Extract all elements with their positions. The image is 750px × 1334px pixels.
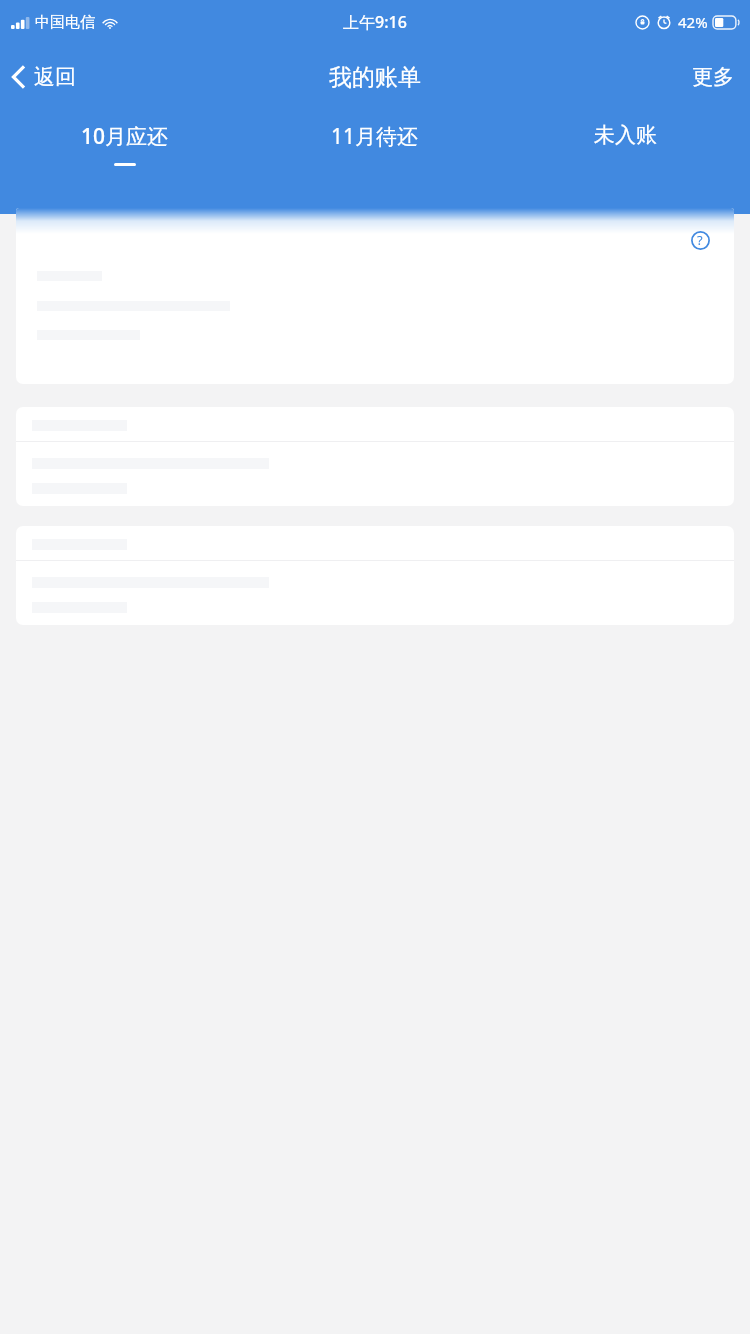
- staticText: 更多: [692, 64, 734, 90]
- button[interactable]: 10月应还: [0, 110, 250, 208]
- staticText: 10月应还: [81, 122, 169, 151]
- staticText: 中国电信: [35, 13, 95, 32]
- staticText: 11月待还: [331, 122, 419, 151]
- button[interactable]: 返回: [0, 58, 90, 96]
- staticText: 42%: [678, 12, 708, 32]
- staticText: 未入账: [594, 122, 657, 148]
- button[interactable]: 更多: [676, 56, 750, 98]
- staticText: 返回: [34, 64, 76, 90]
- button[interactable]: 未入账: [500, 110, 750, 208]
- staticText: 上午9:16: [343, 11, 407, 33]
- staticText: 我的账单: [329, 63, 421, 92]
- button[interactable]: 11月待还: [250, 110, 500, 208]
- staticText: ?: [697, 231, 703, 249]
- button[interactable]: Help: [682, 222, 718, 258]
- button[interactable]: Help: [16, 208, 734, 384]
